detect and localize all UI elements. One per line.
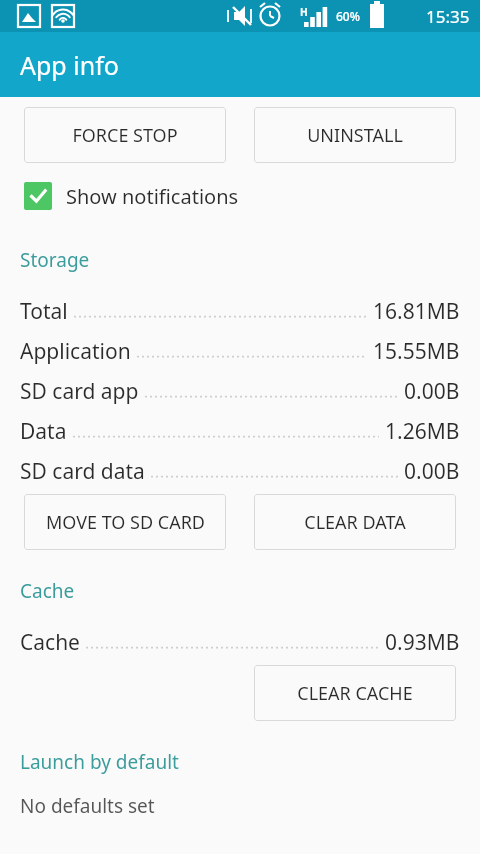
staticText: CLEAR CACHE [297,681,413,706]
staticText: SD card data [20,457,145,486]
button[interactable]: CLEAR CACHE [254,665,456,721]
staticText: No defaults set [20,793,155,819]
button[interactable]: SD card app [0,371,480,411]
staticText: Show notifications [66,183,239,210]
button[interactable]: Total [0,291,480,331]
staticText: 60% [336,8,360,24]
button[interactable]: UNINSTALL [254,107,456,163]
staticText: CLEAR DATA [304,510,406,535]
staticText: 0.93MB [385,628,460,657]
staticText: 0.00B [404,377,460,406]
button[interactable]: MOVE TO SD CARD [24,494,226,550]
button[interactable]: Cache [0,622,480,662]
button[interactable]: Show notifications [0,175,480,217]
staticText: SD card app [20,377,139,406]
staticText: 1.26MB [385,417,460,446]
staticText: 15:35 [426,5,470,28]
staticText: H [300,5,308,19]
staticText: Application [20,337,131,366]
staticText: App info [20,48,119,82]
staticText: UNINSTALL [307,123,403,148]
staticText: Launch by default [20,749,179,775]
button[interactable]: FORCE STOP [24,107,226,163]
button[interactable]: Application [0,331,480,371]
staticText: Cache [20,578,75,604]
staticText: 16.81MB [373,297,460,326]
staticText: 15.55MB [373,337,460,366]
staticText: Storage [20,247,90,273]
button[interactable]: Data [0,411,480,451]
staticText: FORCE STOP [72,123,178,148]
staticText: Total [20,297,68,326]
staticText: Cache [20,628,80,657]
staticText: 0.00B [404,457,460,486]
staticText: Data [20,417,67,446]
staticText: MOVE TO SD CARD [46,510,205,535]
button[interactable]: CLEAR DATA [254,494,456,550]
button[interactable]: SD card data [0,451,480,491]
